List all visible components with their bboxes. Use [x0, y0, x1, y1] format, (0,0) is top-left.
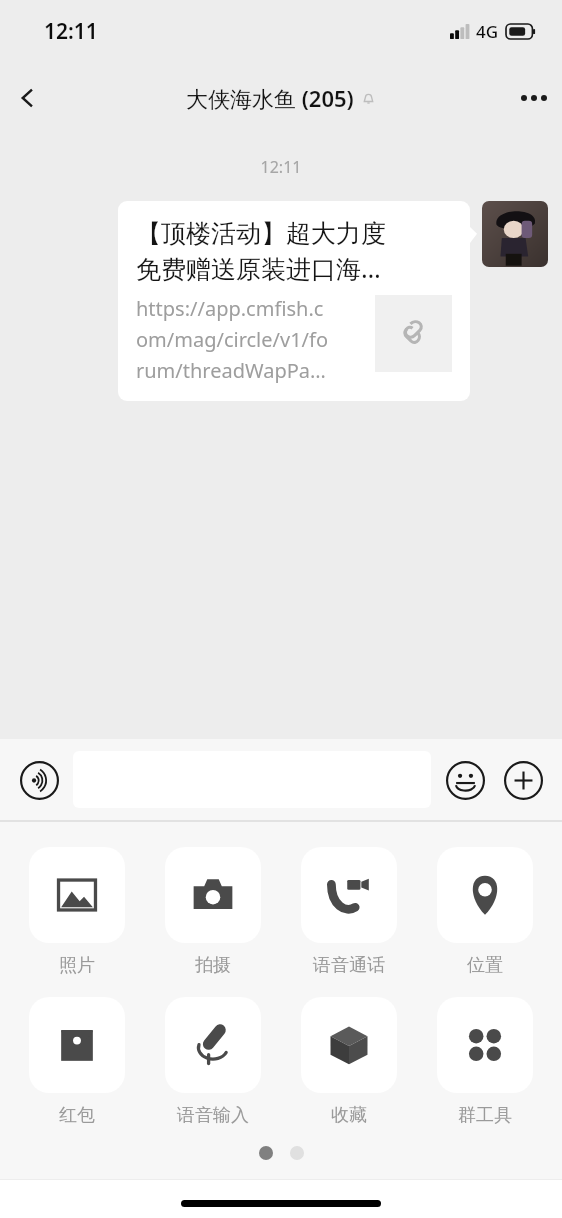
button[interactable]: More options: [506, 70, 562, 126]
button[interactable]: More: [501, 758, 545, 802]
staticText: 4G: [476, 20, 499, 43]
button[interactable]: Avatar: [482, 201, 548, 267]
staticText: 收藏: [331, 1104, 367, 1127]
staticText: https://app.cmfish.c om/mag/circle/v1/fo…: [136, 295, 367, 384]
button[interactable]: 群工具: [430, 997, 540, 1127]
staticText: 12:11: [0, 156, 562, 178]
staticText: 大侠海水鱼 (205): [186, 83, 354, 113]
staticText: 12:11: [44, 17, 98, 46]
staticText: 群工具: [458, 1104, 512, 1127]
staticText: 照片: [59, 954, 95, 977]
button[interactable]: 语音通话: [294, 847, 404, 977]
button[interactable]: 收藏: [294, 997, 404, 1127]
staticText: 语音通话: [313, 954, 385, 977]
button[interactable]: 拍摄: [158, 847, 268, 977]
button[interactable]: 红包: [22, 997, 132, 1127]
button[interactable]: 照片: [22, 847, 132, 977]
staticText: 【顶楼活动】超大力度 免费赠送原装进口海…: [136, 218, 386, 285]
staticText: 位置: [467, 954, 503, 977]
staticText: 拍摄: [195, 954, 231, 977]
staticText: 语音输入: [177, 1104, 249, 1127]
button[interactable]: Back: [0, 70, 56, 126]
button[interactable]: Emoji: [443, 758, 487, 802]
button[interactable]: 位置: [430, 847, 540, 977]
button[interactable]: 语音输入: [158, 997, 268, 1127]
button[interactable]: 【顶楼活动】超大力度 免费赠送原装进口海…: [118, 201, 470, 401]
button[interactable]: Voice input: [17, 758, 61, 802]
staticText: 红包: [59, 1104, 95, 1127]
